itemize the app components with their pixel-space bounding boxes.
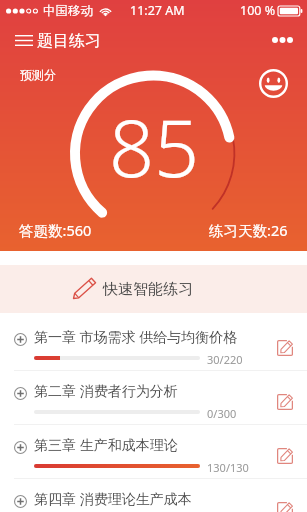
staticText: 题目练习 bbox=[37, 31, 101, 51]
staticText: 11:27 AM bbox=[130, 2, 185, 19]
staticText: 0/300 bbox=[207, 406, 237, 421]
staticText: 30/220 bbox=[207, 352, 243, 367]
button[interactable]: 第二章 消费者行为分析 bbox=[0, 371, 307, 424]
staticText: 中国移动 bbox=[43, 3, 93, 19]
staticText: 第三章 生产和成本理论 bbox=[34, 435, 178, 454]
button[interactable]: Menu bbox=[13, 30, 35, 50]
staticText: 练习天数:26 bbox=[209, 220, 288, 240]
button[interactable]: More options bbox=[266, 30, 298, 50]
staticText: 130/130 bbox=[207, 460, 249, 475]
staticText: 85 bbox=[109, 93, 200, 201]
staticText: 第二章 消费者行为分析 bbox=[34, 381, 178, 400]
button[interactable]: 快速智能练习 bbox=[0, 265, 307, 313]
button[interactable]: 第四章 消费理论生产成本 bbox=[0, 479, 307, 512]
staticText: 预测分 bbox=[20, 67, 56, 82]
button[interactable]: Mood bbox=[258, 68, 288, 98]
button[interactable]: 第三章 生产和成本理论 bbox=[0, 425, 307, 478]
button[interactable]: 第一章 市场需求 供给与均衡价格 bbox=[0, 317, 307, 370]
staticText: 第四章 消费理论生产成本 bbox=[34, 489, 192, 508]
staticText: 快速智能练习 bbox=[103, 280, 193, 299]
button[interactable]: Edit bbox=[274, 499, 295, 512]
button[interactable]: Edit bbox=[274, 391, 295, 412]
button[interactable]: Edit bbox=[274, 337, 295, 358]
button[interactable]: Edit bbox=[274, 445, 295, 466]
staticText: 第一章 市场需求 供给与均衡价格 bbox=[34, 327, 238, 346]
staticText: 答题数:560 bbox=[19, 220, 92, 240]
staticText: 100 % bbox=[240, 2, 276, 19]
